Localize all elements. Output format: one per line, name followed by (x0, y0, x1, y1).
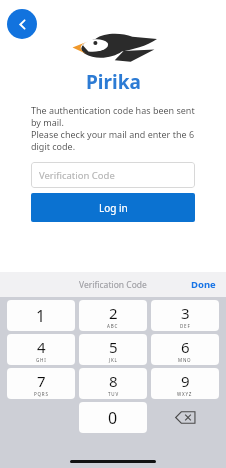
button[interactable]: 9 (151, 368, 219, 399)
button[interactable]: 5 (79, 334, 147, 365)
staticText: 2 (109, 303, 118, 323)
staticText: ABC (107, 323, 119, 329)
button[interactable]: 0 (79, 402, 147, 433)
button[interactable]: 8 (79, 368, 147, 399)
staticText: Log in (99, 201, 128, 215)
staticText: 3 (181, 303, 190, 323)
staticText: 8 (109, 371, 118, 391)
staticText: Pirika (86, 69, 141, 95)
staticText: 1 (36, 305, 46, 327)
button[interactable]: 1 (7, 300, 75, 331)
staticText: The authentication code has been sent by… (31, 104, 195, 152)
staticText: Verification Code (39, 169, 115, 182)
staticText: Done (191, 278, 216, 291)
staticText: 5 (109, 337, 118, 357)
button[interactable]: 6 (151, 334, 219, 365)
staticText: JKL (109, 357, 118, 363)
button[interactable]: 7 (7, 368, 75, 399)
staticText: 7 (37, 371, 46, 391)
button[interactable]: Backspace (151, 402, 219, 433)
staticText: MNO (178, 357, 192, 363)
staticText: 0 (108, 407, 118, 429)
button[interactable]: 2 (79, 300, 147, 331)
button[interactable]: Verification Code (31, 162, 195, 188)
staticText: 9 (181, 371, 190, 391)
button[interactable]: Back (7, 9, 37, 39)
button[interactable]: 3 (151, 300, 219, 331)
staticText: GHI (36, 357, 47, 363)
staticText: WXYZ (177, 391, 193, 397)
staticText: DEF (180, 323, 191, 329)
button[interactable]: Done (181, 273, 226, 296)
staticText: 4 (37, 337, 46, 357)
staticText: Verification Code (79, 279, 147, 291)
staticText: 6 (181, 337, 190, 357)
staticText: PQRS (34, 391, 49, 397)
button[interactable]: 4 (7, 334, 75, 365)
staticText: TUV (108, 391, 119, 397)
button[interactable]: Log in (31, 193, 195, 222)
